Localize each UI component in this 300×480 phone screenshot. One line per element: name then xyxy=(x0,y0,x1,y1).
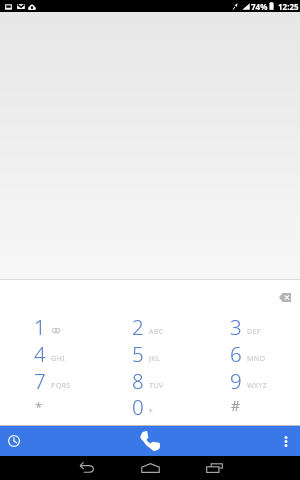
button[interactable]: Recents xyxy=(182,456,246,480)
staticText: 1 xyxy=(34,313,46,340)
staticText: PQRS xyxy=(51,380,71,390)
staticText: 0 xyxy=(132,393,144,420)
button[interactable]: * xyxy=(1,393,99,420)
button[interactable]: 1 xyxy=(1,313,99,340)
staticText: 4 xyxy=(34,340,46,367)
staticText: 9 xyxy=(230,367,242,394)
button[interactable]: Home xyxy=(118,456,182,480)
button[interactable]: 2 xyxy=(99,313,197,340)
button[interactable]: 3 xyxy=(197,313,295,340)
staticText: 8 xyxy=(132,367,144,394)
staticText: DEF xyxy=(247,326,261,336)
button[interactable]: 0 xyxy=(99,393,197,420)
staticText: TUV xyxy=(149,380,164,390)
staticText: JKL xyxy=(149,353,161,363)
button[interactable]: More options xyxy=(258,426,300,456)
button[interactable]: Call xyxy=(100,426,200,456)
button[interactable]: 9 xyxy=(197,367,295,394)
staticText: 3 xyxy=(230,313,242,340)
staticText: MNO xyxy=(247,353,266,363)
button[interactable]: 5 xyxy=(99,340,197,367)
button[interactable]: Call history xyxy=(0,426,42,456)
staticText: 74% xyxy=(251,1,268,12)
staticText: 5 xyxy=(132,340,144,367)
button[interactable]: 6 xyxy=(197,340,295,367)
staticText: ABC xyxy=(149,326,164,336)
button[interactable]: 7 xyxy=(1,367,99,394)
staticText: WXYZ xyxy=(247,380,268,390)
button[interactable]: Backspace xyxy=(272,286,298,308)
staticText: 2 xyxy=(132,313,144,340)
button[interactable]: 4 xyxy=(1,340,99,367)
staticText: 6 xyxy=(230,340,242,367)
button[interactable]: Back xyxy=(54,456,118,480)
button[interactable]: # xyxy=(197,393,295,420)
button[interactable]: 8 xyxy=(99,367,197,394)
staticText: * xyxy=(35,398,43,416)
staticText: 12:25 xyxy=(278,1,299,12)
staticText: GHI xyxy=(51,353,65,363)
staticText: 7 xyxy=(34,367,46,394)
staticText: # xyxy=(231,396,241,415)
